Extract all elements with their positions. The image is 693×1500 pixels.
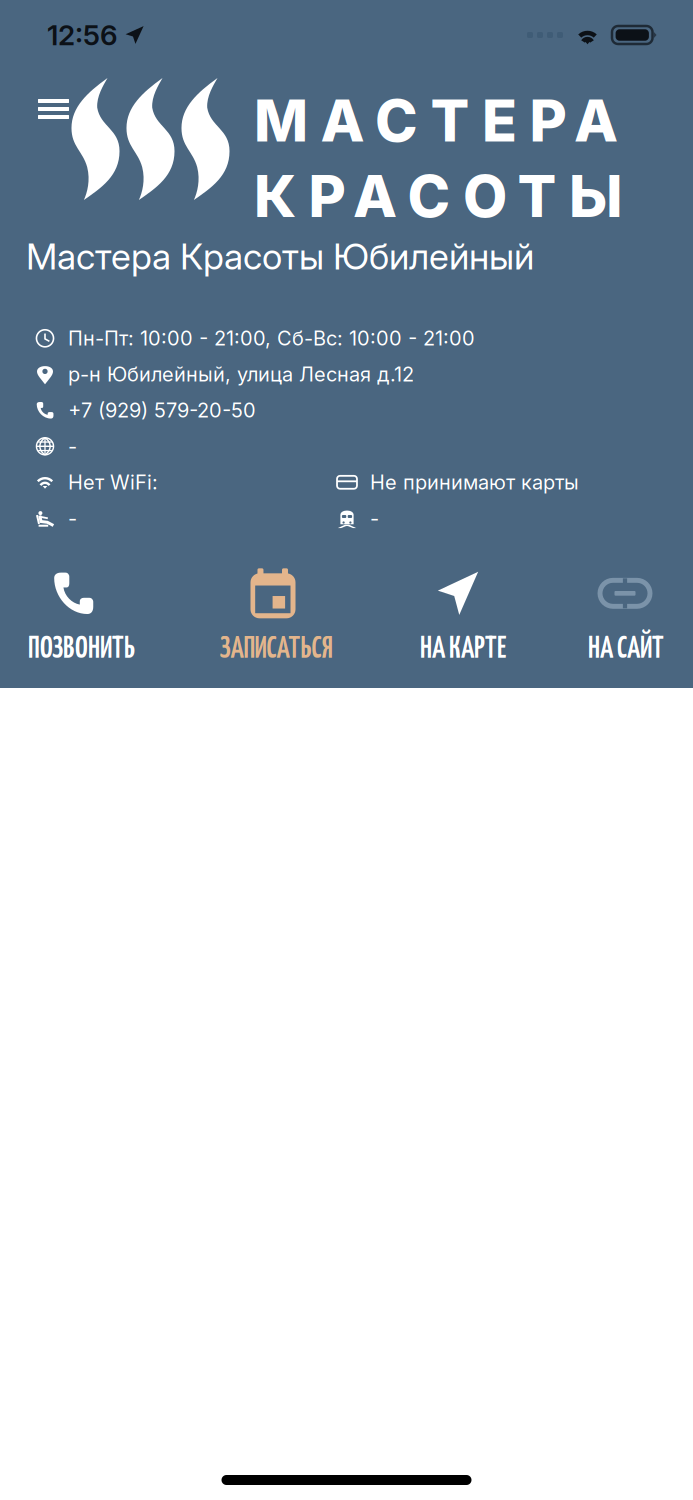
staticText: Пн-Пт: 10:00 - 21:00, Сб-Вс: 10:00 - 21:…	[68, 326, 475, 350]
staticText: НА САЙТ	[588, 635, 664, 664]
button[interactable]: ЗАПИСАТЬСЯ	[163, 568, 389, 664]
staticText: +7 (929) 579-20-50	[68, 398, 256, 422]
staticText: Мастера Красоты Юбилейный	[26, 235, 534, 278]
staticText: р-н Юбилейный, улица Лесная д.12	[68, 362, 414, 386]
staticText: 12:56	[47, 18, 118, 52]
staticText: Не принимают карты	[370, 470, 579, 494]
staticText: КРАСОТЫ	[254, 161, 622, 231]
button[interactable]: ПОЗВОНИТЬ	[0, 568, 163, 664]
staticText: -	[68, 506, 77, 530]
staticText: Нет WiFi:	[68, 470, 158, 494]
staticText: -	[68, 434, 77, 458]
staticText: МАСТЕРА	[254, 86, 618, 155]
staticText: ЗАПИСАТЬСЯ	[219, 635, 332, 664]
staticText: НА КАРТЕ	[420, 635, 506, 664]
staticText: ПОЗВОНИТЬ	[28, 635, 135, 664]
button[interactable]: НА САЙТ	[537, 568, 693, 664]
button[interactable]: НА КАРТЕ	[389, 568, 537, 664]
button[interactable]: Menu	[38, 99, 69, 119]
staticText: -	[370, 506, 379, 530]
